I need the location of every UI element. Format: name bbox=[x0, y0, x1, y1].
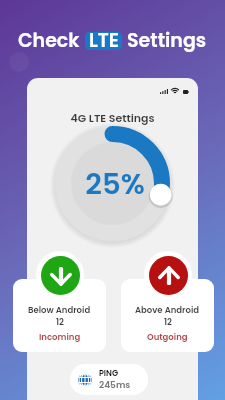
button[interactable]: Below Android bbox=[13, 279, 106, 352]
staticText: Outgoing bbox=[147, 331, 188, 343]
staticText: 12 bbox=[56, 316, 64, 328]
button[interactable]: Outgoing bbox=[144, 251, 192, 299]
staticText: 25% bbox=[85, 164, 145, 205]
button[interactable]: Incoming bbox=[36, 251, 84, 299]
staticText: Incoming bbox=[39, 331, 81, 343]
button[interactable]: Above Android bbox=[121, 279, 214, 352]
staticText: Below Android bbox=[28, 304, 91, 316]
staticText: 12 bbox=[164, 316, 172, 328]
staticText: 245ms bbox=[99, 379, 131, 392]
button[interactable]: PING bbox=[70, 364, 148, 395]
staticText: PING bbox=[99, 368, 119, 379]
staticText: 4G LTE Settings bbox=[27, 110, 198, 125]
staticText: LTE bbox=[89, 27, 119, 54]
staticText: Settings bbox=[127, 27, 207, 54]
staticText: Check bbox=[18, 27, 80, 54]
staticText: Above Android bbox=[135, 304, 200, 316]
